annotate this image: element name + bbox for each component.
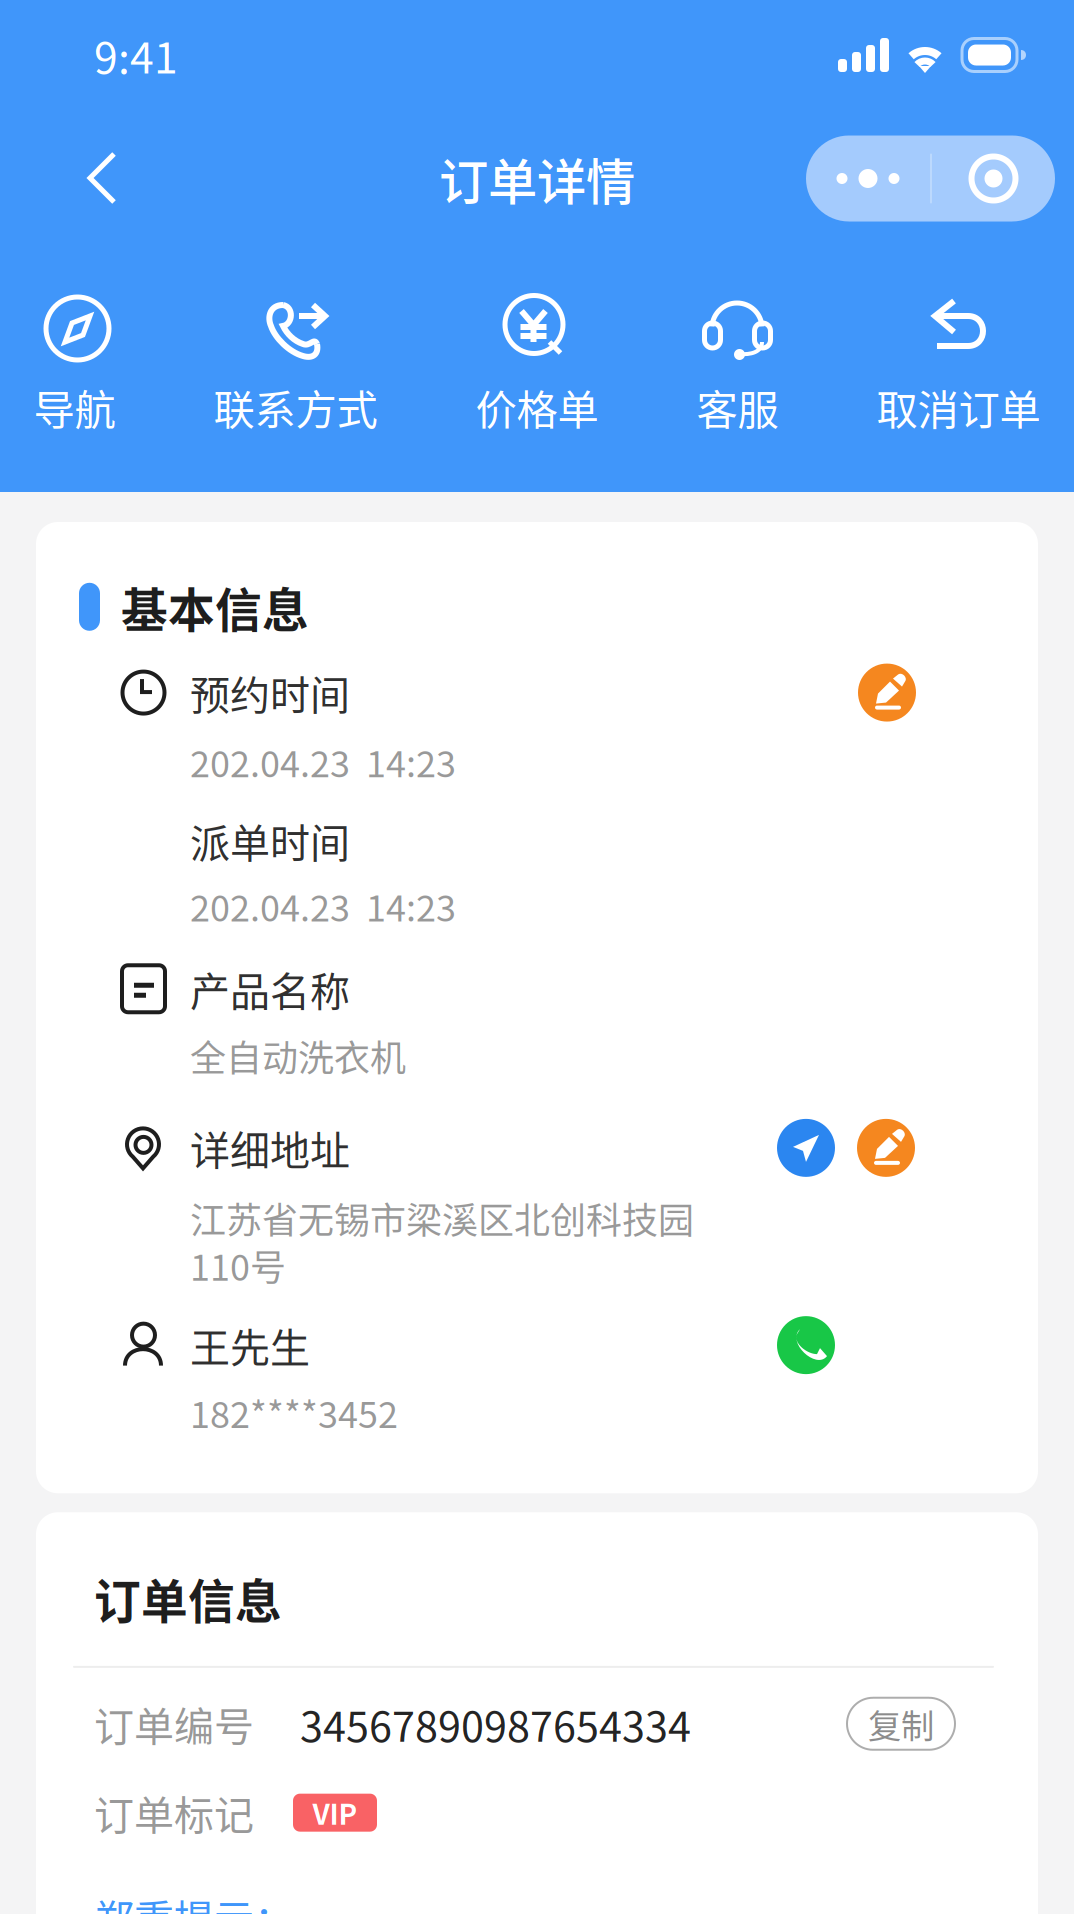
staticText: 订单详情 <box>439 143 635 214</box>
staticText: 郑重提示： <box>94 1888 294 1914</box>
staticText: 110号 <box>190 1239 286 1291</box>
staticText: 基本信息 <box>121 573 309 641</box>
staticText: 复制 <box>868 1700 934 1748</box>
button[interactable]: Edit address <box>857 1119 915 1177</box>
button[interactable]: Navigate to address <box>777 1119 835 1177</box>
staticText: 订单标记 <box>94 1784 254 1842</box>
staticText: 订单信息 <box>94 1564 282 1632</box>
button[interactable]: 客服 <box>696 294 778 437</box>
staticText: 34567890987654334 <box>300 1694 691 1754</box>
button[interactable]: 价格单 <box>475 294 598 437</box>
button[interactable]: More options <box>806 135 1055 221</box>
staticText: 全自动洗衣机 <box>190 1030 406 1082</box>
staticText: 预约时间 <box>190 664 350 721</box>
staticText: 客服 <box>696 377 778 437</box>
staticText: VIP <box>312 1792 357 1833</box>
staticText: 派单时间 <box>190 812 350 870</box>
staticText: 王先生 <box>190 1316 310 1374</box>
staticText: 产品名称 <box>190 960 350 1018</box>
staticText: 价格单 <box>475 377 598 437</box>
button[interactable]: Call customer <box>777 1316 835 1374</box>
staticText: 详细地址 <box>190 1119 350 1177</box>
staticText: 9:41 <box>94 24 178 86</box>
staticText: 182****3452 <box>190 1386 398 1438</box>
staticText: 202.04.23 14:23 <box>190 736 456 788</box>
staticText: 取消订单 <box>876 377 1040 437</box>
button[interactable]: 导航 <box>33 294 115 437</box>
button[interactable]: 联系方式 <box>213 294 377 437</box>
staticText: 联系方式 <box>213 377 377 437</box>
staticText: 江苏省无锡市梁溪区北创科技园 <box>190 1192 694 1244</box>
staticText: 202.04.23 14:23 <box>190 880 456 932</box>
staticText: 导航 <box>33 377 115 437</box>
button[interactable]: 复制 <box>847 1698 955 1750</box>
staticText: 订单编号 <box>94 1695 254 1753</box>
button[interactable]: Edit appointment time <box>858 664 916 722</box>
button[interactable]: 取消订单 <box>876 294 1040 437</box>
button[interactable]: Back <box>72 135 132 221</box>
